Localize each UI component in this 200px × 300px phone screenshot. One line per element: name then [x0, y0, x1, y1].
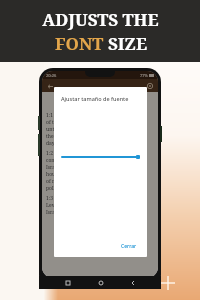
- button[interactable]: Cerrar: [117, 241, 141, 252]
- staticText: congregation of the: [46, 157, 93, 164]
- staticText: 1:3 From twenty ye: [46, 195, 94, 202]
- staticText: unto Moses in the wil: [46, 126, 97, 133]
- button[interactable]: Settings: [145, 81, 155, 91]
- staticText: ADJUSTS THE: [42, 8, 159, 31]
- staticText: polls;: [46, 185, 59, 192]
- button[interactable]: [61, 149, 140, 165]
- button[interactable]: Back: [128, 278, 137, 287]
- staticText: THE BOOK: [46, 95, 154, 107]
- staticText: the tabernacle of the: [46, 133, 96, 140]
- button[interactable]: Recents: [63, 278, 72, 287]
- staticText: 20:26: [46, 73, 57, 78]
- staticText: of names, every male: [46, 178, 97, 185]
- staticText: Israel, after their fam: [46, 164, 97, 171]
- staticText: 1:2 Take ye the sum: [46, 150, 95, 157]
- staticText: of the children of Isr: [46, 119, 95, 126]
- staticText: day of the second mo: [46, 140, 97, 147]
- staticText: 77%: [140, 73, 148, 78]
- staticText: Cerrar: [121, 243, 137, 250]
- staticText: FONT SIZE: [55, 32, 147, 55]
- staticText: Israel, that they should: [46, 209, 101, 216]
- staticText: house of their fathers: [46, 171, 98, 178]
- button[interactable]: Home: [96, 278, 105, 287]
- staticText: 1:1 Now these are the: [46, 112, 99, 119]
- staticText: Levi, after the tribe of: [46, 202, 98, 209]
- button[interactable]: Back: [45, 81, 55, 91]
- staticText: Ajustar tamaño de fuente: [61, 95, 129, 102]
